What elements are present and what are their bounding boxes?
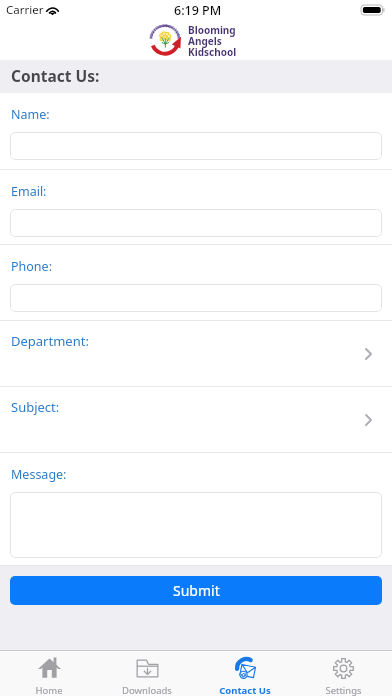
staticText: Home (35, 684, 63, 696)
button[interactable]: Settings (294, 651, 392, 696)
staticText: Message: (11, 466, 67, 483)
button[interactable]: Contact Us (196, 651, 294, 696)
staticText: Kidschool (188, 45, 237, 59)
staticText: Contact Us: (11, 65, 100, 86)
staticText: Downloads (122, 684, 172, 696)
button[interactable]: Submit (10, 576, 382, 605)
staticText: Submit (173, 581, 220, 600)
staticText: Angels (188, 34, 222, 48)
staticText: Email: (11, 183, 47, 200)
button[interactable] (10, 209, 382, 237)
staticText: Phone: (11, 258, 52, 275)
staticText: Carrier (6, 2, 44, 18)
staticText: Subject: (11, 398, 60, 416)
staticText: Department: (11, 332, 89, 350)
staticText: Name: (11, 106, 50, 123)
button[interactable] (10, 132, 382, 160)
button[interactable] (10, 492, 382, 558)
button[interactable] (10, 284, 382, 312)
staticText: 6:19 PM (174, 2, 222, 19)
staticText: Settings (325, 684, 362, 696)
staticText: Contact Us (219, 684, 271, 696)
button[interactable]: Home (0, 651, 98, 696)
button[interactable]: Downloads (98, 651, 196, 696)
staticText: Blooming (188, 23, 236, 37)
button[interactable]: Subject: (0, 387, 392, 453)
button[interactable]: Department: (0, 321, 392, 387)
